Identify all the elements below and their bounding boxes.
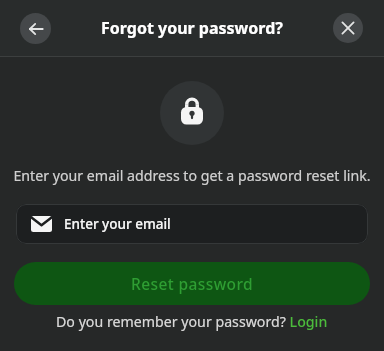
staticText: Do you remember your password? Login: [56, 312, 328, 331]
staticText: Enter your email address to get a passwo…: [13, 166, 371, 185]
staticText: Forgot your password?: [101, 17, 283, 39]
button[interactable]: Enter your email: [16, 204, 368, 244]
button[interactable]: [333, 13, 363, 43]
button[interactable]: Do you remember your password? Login: [0, 312, 384, 331]
button[interactable]: Reset password: [14, 262, 370, 305]
staticText: Enter your email: [64, 215, 171, 233]
button[interactable]: [20, 13, 51, 44]
staticText: Reset password: [131, 273, 254, 294]
